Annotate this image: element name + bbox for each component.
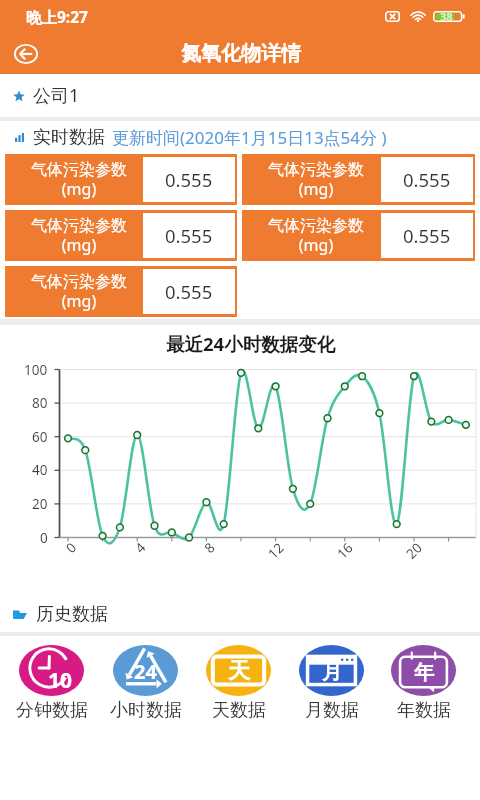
staticText: 小时数据 <box>110 699 182 722</box>
button[interactable]: 公司1 <box>0 74 480 117</box>
staticText: 气体污染参数 (mg) <box>31 272 127 311</box>
staticText: 0.555 <box>403 223 451 248</box>
staticText: 年数据 <box>397 699 451 722</box>
button[interactable]: 气体污染参数 (mg) <box>5 210 237 261</box>
button[interactable]: 月 <box>285 636 378 722</box>
staticText: 0.555 <box>165 279 213 304</box>
staticText: 晚上9:27 <box>26 6 88 27</box>
staticText: 更新时间(2020年1月15日13点54分 ) <box>112 126 387 149</box>
staticText: 气体污染参数 (mg) <box>268 216 364 255</box>
button[interactable]: 24 <box>99 636 192 722</box>
staticText: 气体污染参数 (mg) <box>268 160 364 199</box>
staticText: 年 <box>414 660 434 685</box>
button[interactable]: Back <box>7 35 44 72</box>
button[interactable]: 气体污染参数 (mg) <box>242 210 475 261</box>
staticText: 24 <box>134 658 157 685</box>
staticText: 10 <box>48 666 73 695</box>
button[interactable]: 气体污染参数 (mg) <box>5 154 237 205</box>
staticText: 最近24小时数据变化 <box>166 331 336 356</box>
staticText: 0.555 <box>403 167 451 192</box>
button[interactable]: 气体污染参数 (mg) <box>242 154 475 205</box>
staticText: 月 <box>322 660 342 685</box>
button[interactable]: 天 <box>192 636 285 722</box>
staticText: 公司1 <box>33 83 80 108</box>
staticText: 气体污染参数 (mg) <box>31 216 127 255</box>
staticText: 实时数据 <box>33 126 105 149</box>
staticText: 氮氧化物详情 <box>181 41 301 66</box>
staticText: 天 <box>228 657 250 685</box>
button[interactable]: 年 <box>377 636 470 722</box>
button[interactable]: 10 <box>5 636 98 722</box>
staticText: 月数据 <box>305 699 359 722</box>
staticText: 气体污染参数 (mg) <box>31 160 127 199</box>
staticText: 38 <box>440 9 453 24</box>
staticText: 天数据 <box>212 699 266 722</box>
staticText: 0.555 <box>165 167 213 192</box>
staticText: 分钟数据 <box>16 699 88 722</box>
staticText: 0.555 <box>165 223 213 248</box>
staticText: 历史数据 <box>36 603 108 626</box>
button[interactable]: 气体污染参数 (mg) <box>5 266 237 317</box>
